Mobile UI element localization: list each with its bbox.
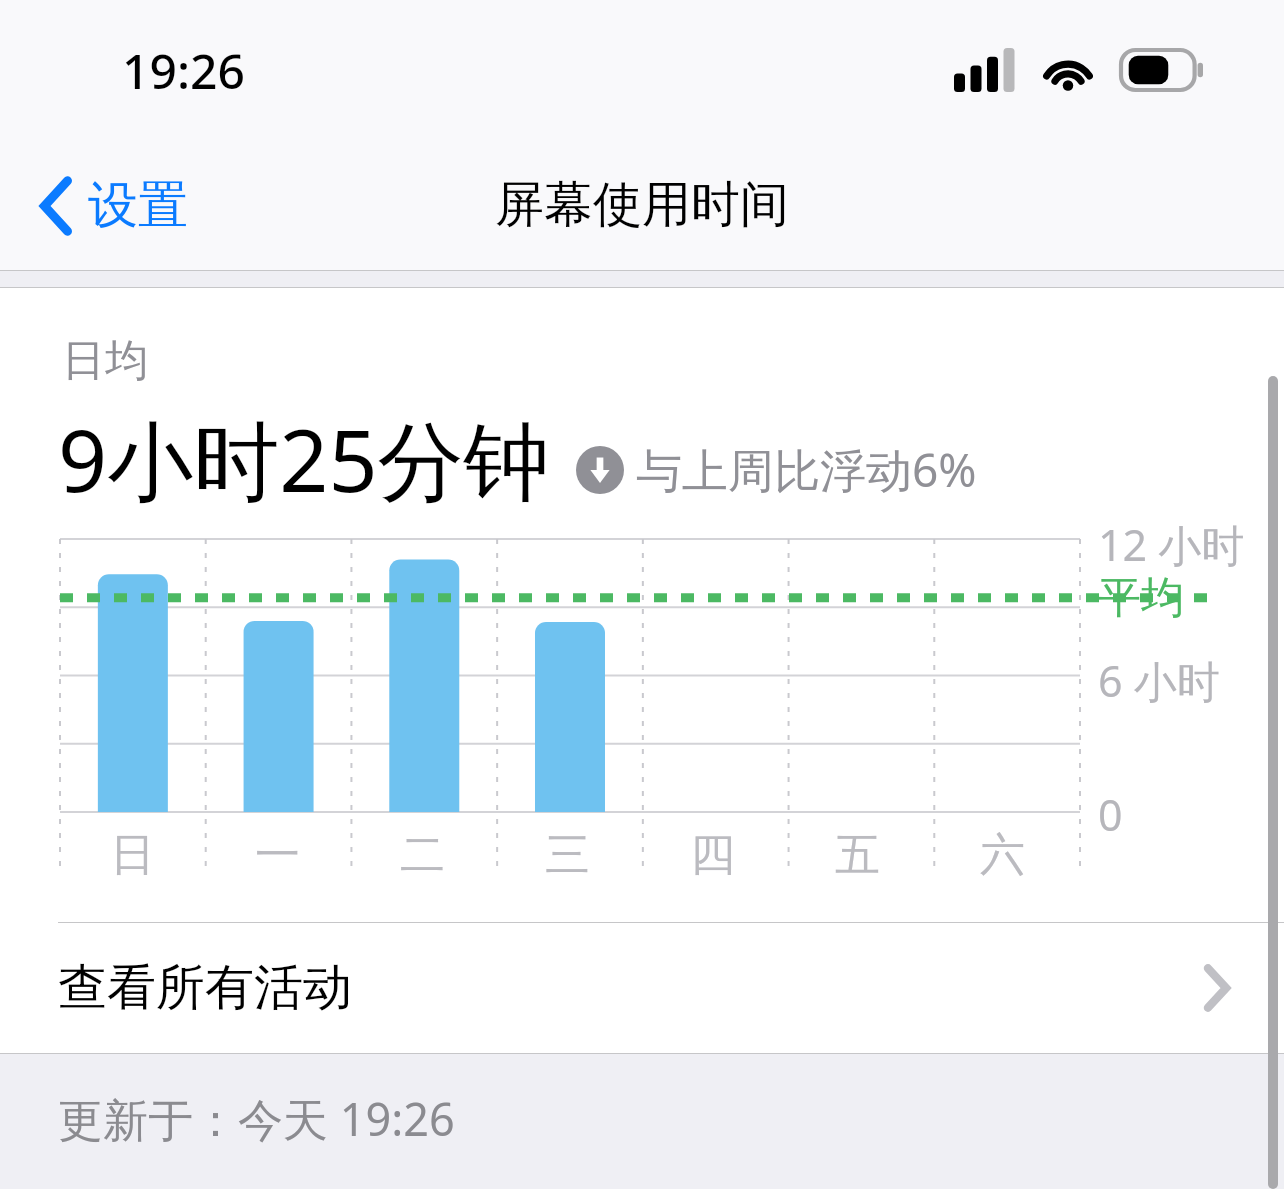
staticText: 6 小时 [1098,651,1220,710]
staticText: 屏幕使用时间 [495,174,789,236]
staticText: 19:26 [122,38,245,103]
staticText: 平均 [1098,571,1184,625]
staticText: 一 [255,827,300,884]
button[interactable]: 查看所有活动 [0,923,1284,1053]
staticText: 更新于：今天 19:26 [58,1088,455,1149]
staticText: 四 [690,827,735,884]
staticText: 查看所有活动 [58,957,1204,1019]
staticText: 与上周比浮动6% [636,438,977,501]
staticText: 六 [980,827,1025,884]
staticText: 二 [400,827,445,884]
other: Back [40,178,72,234]
staticText: 12 小时 [1098,515,1245,574]
staticText: 0 [1098,785,1123,844]
staticText: 日均 [62,334,148,388]
button[interactable]: Back [30,162,198,249]
staticText: 9小时25分钟 [58,400,550,517]
staticText: 三 [545,827,590,884]
staticText: 设置 [88,174,188,237]
staticText: 五 [835,827,880,884]
staticText: 日 [110,827,155,884]
